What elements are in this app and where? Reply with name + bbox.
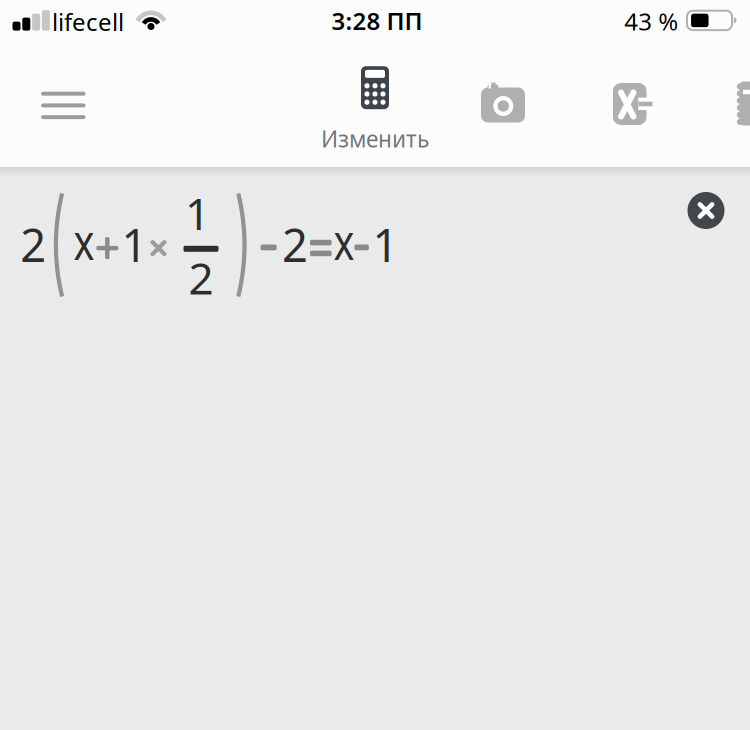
staticText: 1: [121, 214, 147, 274]
staticText: 3:28 ПП: [331, 5, 422, 37]
staticText: 43 %: [624, 5, 678, 37]
staticText: 2: [20, 214, 46, 274]
staticText: x: [330, 207, 357, 274]
staticText: Изменить: [321, 124, 429, 154]
button[interactable]: Изменить: [315, 40, 435, 167]
staticText: 1: [185, 184, 210, 242]
staticText: 2: [282, 214, 308, 274]
button[interactable]: Close: [687, 192, 724, 229]
staticText: x: [70, 207, 97, 274]
button[interactable]: Notebook: [736, 81, 750, 125]
button[interactable]: Menu: [31, 73, 95, 137]
staticText: lifecell: [52, 6, 124, 38]
staticText: 2: [188, 248, 213, 307]
staticText: 1: [373, 214, 399, 274]
button[interactable]: Camera: [481, 82, 525, 122]
button[interactable]: Solver: [613, 83, 655, 125]
